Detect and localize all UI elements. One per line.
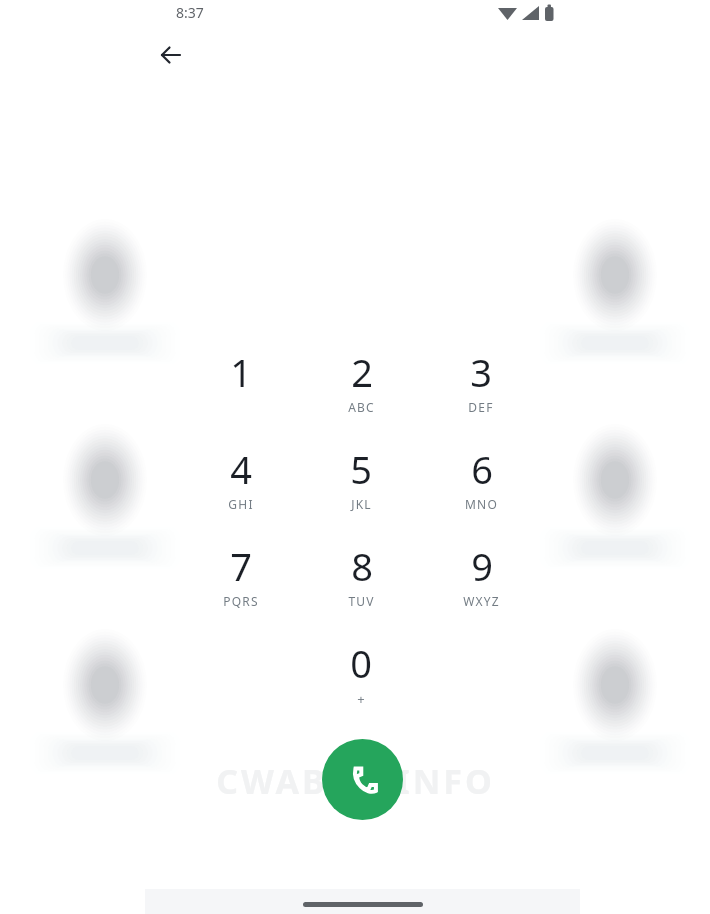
- button[interactable]: 0: [301, 637, 421, 729]
- staticText: 0: [350, 637, 372, 689]
- staticText: 8: [351, 540, 373, 592]
- staticText: +: [357, 690, 365, 708]
- button[interactable]: Back: [148, 32, 194, 78]
- staticText: GHI: [228, 496, 254, 512]
- button[interactable]: 4: [181, 443, 301, 535]
- staticText: 7: [230, 540, 252, 592]
- button[interactable]: 6: [421, 443, 541, 535]
- button[interactable]: 7: [181, 540, 301, 632]
- button[interactable]: 8: [301, 540, 421, 632]
- staticText: ABC: [348, 399, 375, 415]
- staticText: 1: [230, 346, 252, 398]
- staticText: TUV: [348, 593, 375, 609]
- button[interactable]: 2: [301, 346, 421, 438]
- staticText: DEF: [468, 399, 494, 415]
- staticText: 9: [471, 540, 493, 592]
- button[interactable]: 3: [421, 346, 541, 438]
- staticText: 4: [230, 443, 252, 495]
- button[interactable]: Call: [322, 739, 403, 820]
- staticText: JKL: [351, 496, 372, 512]
- staticText: PQRS: [223, 593, 259, 609]
- staticText: 8:37: [176, 3, 204, 22]
- button[interactable]: 1: [181, 346, 301, 438]
- staticText: MNO: [465, 496, 498, 512]
- staticText: 5: [350, 443, 372, 495]
- staticText: 3: [470, 346, 492, 398]
- button[interactable]: 5: [301, 443, 421, 535]
- staticText: 2: [351, 346, 373, 398]
- button[interactable]: 9: [421, 540, 541, 632]
- staticText: WXYZ: [463, 593, 500, 609]
- staticText: 6: [471, 443, 493, 495]
- staticText: CWABETAINFO: [216, 758, 495, 804]
